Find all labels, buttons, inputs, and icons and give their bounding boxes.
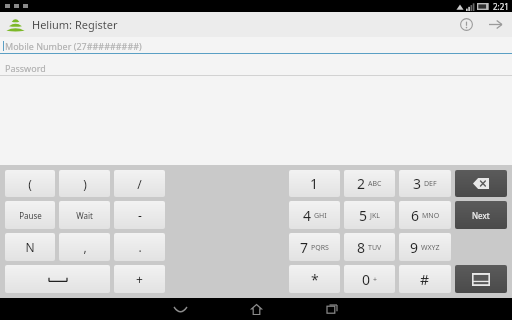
button[interactable]: 2 xyxy=(344,170,395,197)
button[interactable]: 8 xyxy=(344,233,395,261)
staticText: MNO xyxy=(422,211,440,221)
staticText: Mobile Number (27#########) xyxy=(5,40,142,52)
button[interactable]: , xyxy=(59,233,110,261)
button[interactable]: N xyxy=(5,233,55,261)
staticText: Password xyxy=(5,62,46,74)
button[interactable]: 5 xyxy=(344,201,395,229)
button[interactable]: 0 xyxy=(344,265,395,293)
staticText: JKL xyxy=(370,211,380,221)
staticText: WXYZ xyxy=(421,243,440,253)
staticText: 8 xyxy=(357,238,366,257)
staticText: Helium: Register xyxy=(32,17,118,32)
button[interactable]: ( xyxy=(5,170,55,197)
button[interactable]: 6 xyxy=(399,201,451,229)
staticText: ABC xyxy=(368,179,382,189)
staticText: . xyxy=(138,239,142,255)
staticText: Next xyxy=(472,210,490,221)
staticText: 7 xyxy=(300,238,309,257)
button[interactable]: Space xyxy=(5,265,110,293)
staticText: / xyxy=(137,176,142,192)
button[interactable]: Back xyxy=(156,298,204,320)
staticText: * xyxy=(311,270,319,289)
button[interactable]: # xyxy=(399,265,451,293)
staticText: , xyxy=(83,239,87,255)
button[interactable]: - xyxy=(114,201,165,229)
staticText: # xyxy=(420,270,430,289)
staticText: Pause xyxy=(19,210,42,221)
button[interactable]: Pause xyxy=(5,201,55,229)
button[interactable]: 9 xyxy=(399,233,451,261)
staticText: 1 xyxy=(310,174,319,193)
button[interactable]: / xyxy=(114,170,165,197)
button[interactable]: 1 xyxy=(289,170,340,197)
button[interactable]: Password xyxy=(0,61,512,83)
button[interactable]: Home xyxy=(232,298,280,320)
button[interactable]: * xyxy=(289,265,340,293)
button[interactable]: Next xyxy=(455,201,507,229)
staticText: 3 xyxy=(413,174,422,193)
staticText: 4 xyxy=(303,206,312,225)
staticText: 6 xyxy=(411,206,420,225)
button[interactable]: ) xyxy=(59,170,110,197)
staticText: 2:21 xyxy=(493,1,509,12)
button[interactable]: Wait xyxy=(59,201,110,229)
button[interactable]: Mobile Number (27#########) xyxy=(0,39,512,61)
button[interactable]: Next xyxy=(480,12,510,37)
button[interactable]: Switch keyboard xyxy=(455,265,507,293)
button[interactable]: 7 xyxy=(289,233,340,261)
staticText: 9 xyxy=(410,238,419,257)
staticText: + xyxy=(373,275,378,285)
staticText: ( xyxy=(28,176,32,192)
staticText: TUV xyxy=(368,243,382,253)
staticText: Wait xyxy=(76,210,93,221)
staticText: ) xyxy=(83,176,87,192)
button[interactable]: + xyxy=(114,265,165,293)
button[interactable]: 3 xyxy=(399,170,451,197)
staticText: 2 xyxy=(357,174,366,193)
staticText: DEF xyxy=(424,179,437,189)
staticText: GHI xyxy=(314,211,327,221)
staticText: 0 xyxy=(362,270,371,289)
button[interactable]: Info xyxy=(452,12,480,37)
staticText: N xyxy=(25,239,35,255)
staticText: + xyxy=(136,271,143,287)
button[interactable]: Backspace xyxy=(455,170,507,197)
staticText: - xyxy=(138,207,142,223)
staticText: PQRS xyxy=(311,243,329,253)
button[interactable]: . xyxy=(114,233,165,261)
button[interactable]: 4 xyxy=(289,201,340,229)
staticText: 5 xyxy=(359,206,368,225)
button[interactable]: Recents xyxy=(308,298,356,320)
